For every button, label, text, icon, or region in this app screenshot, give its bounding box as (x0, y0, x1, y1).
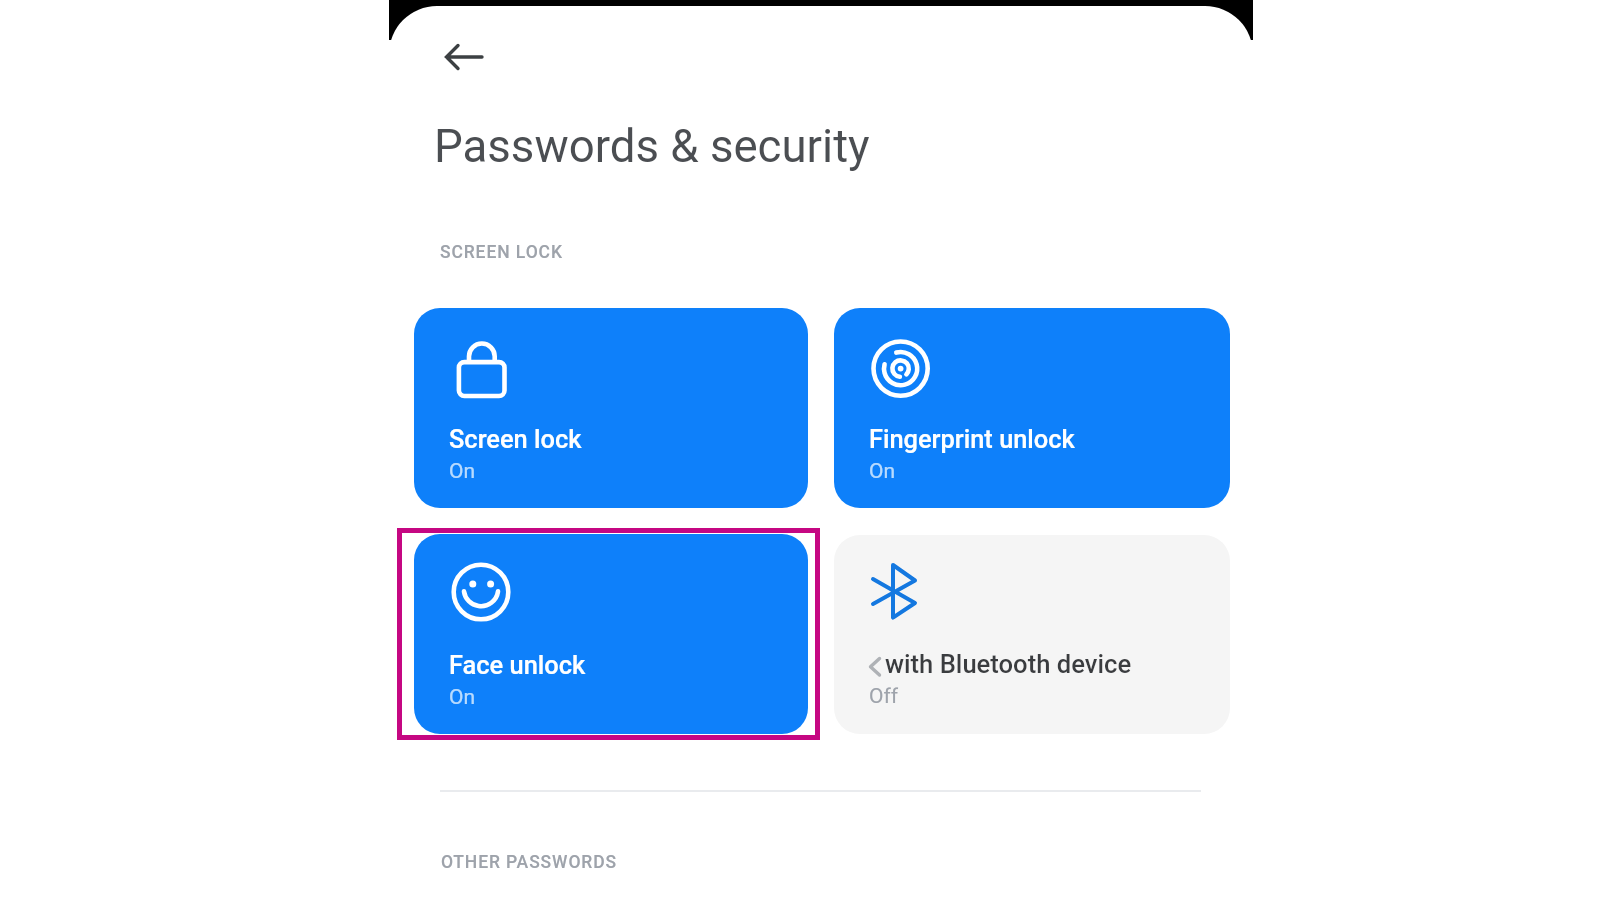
button[interactable]: Fingerprint unlock (834, 308, 1230, 508)
button[interactable]: Back (429, 29, 495, 87)
staticText: SCREEN LOCK (440, 242, 563, 263)
staticText: On (449, 459, 476, 484)
staticText: Face unlock (449, 650, 586, 680)
button[interactable]: with Bluetooth device (834, 535, 1230, 734)
staticText: Off (869, 684, 899, 709)
staticText: OTHER PASSWORDS (441, 852, 617, 873)
staticText: Fingerprint unlock (869, 424, 1075, 454)
staticText: On (869, 459, 896, 484)
staticText: On (449, 685, 476, 710)
staticText: with Bluetooth device (885, 649, 1132, 679)
button[interactable]: Screen lock (414, 308, 808, 508)
staticText: Passwords & security (434, 120, 870, 173)
staticText: Screen lock (449, 424, 582, 454)
button[interactable]: Face unlock (414, 534, 808, 734)
